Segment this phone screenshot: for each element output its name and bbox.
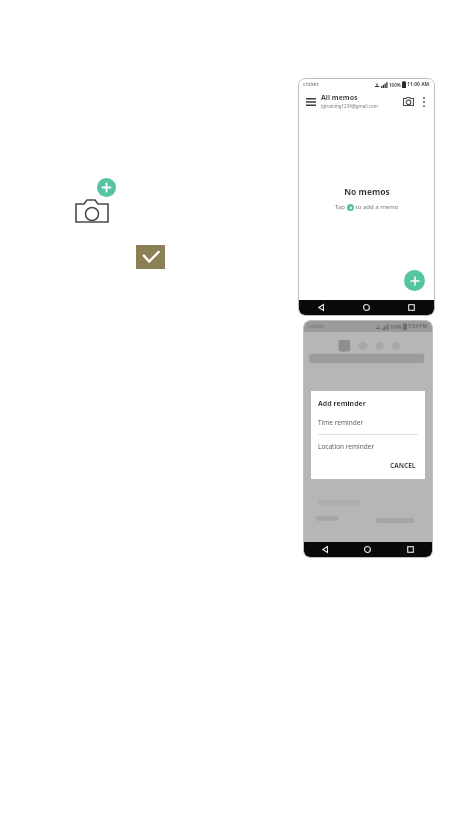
staticText: lgtraining1234@gmail.com bbox=[321, 103, 378, 109]
button[interactable]: Back bbox=[304, 542, 346, 557]
button[interactable]: Time reminder bbox=[318, 418, 418, 427]
staticText: Add reminder bbox=[318, 399, 366, 409]
staticText: cricket bbox=[303, 81, 319, 88]
staticText: 7:54 PM bbox=[408, 323, 428, 330]
staticText: 100% bbox=[389, 82, 401, 88]
button[interactable]: Add memo bbox=[404, 270, 425, 291]
staticText: to add a memo bbox=[354, 203, 399, 211]
staticText: cricket bbox=[308, 323, 324, 330]
staticText: No memos bbox=[344, 186, 390, 198]
button[interactable]: Take photo memo bbox=[401, 94, 415, 108]
button[interactable]: Add photo memo bbox=[74, 178, 118, 224]
staticText: 11:00 AM bbox=[407, 81, 430, 88]
button[interactable]: CANCEL bbox=[388, 460, 418, 471]
button[interactable]: Home bbox=[344, 300, 389, 315]
staticText: Tap bbox=[335, 203, 347, 211]
button[interactable]: Home bbox=[346, 542, 389, 557]
button[interactable]: More options bbox=[418, 96, 429, 107]
staticText: All memos bbox=[321, 93, 358, 103]
button[interactable]: Done bbox=[136, 245, 165, 269]
button[interactable]: Location reminder bbox=[318, 442, 418, 451]
staticText: Time reminder bbox=[318, 418, 364, 427]
staticText: 100% bbox=[390, 324, 402, 330]
button[interactable]: Back bbox=[299, 300, 344, 315]
staticText: Location reminder bbox=[318, 442, 375, 451]
button[interactable]: Recent apps bbox=[389, 300, 434, 315]
staticText: CANCEL bbox=[390, 461, 416, 470]
button[interactable]: Recent apps bbox=[389, 542, 432, 557]
button[interactable]: Open navigation menu bbox=[304, 95, 317, 108]
